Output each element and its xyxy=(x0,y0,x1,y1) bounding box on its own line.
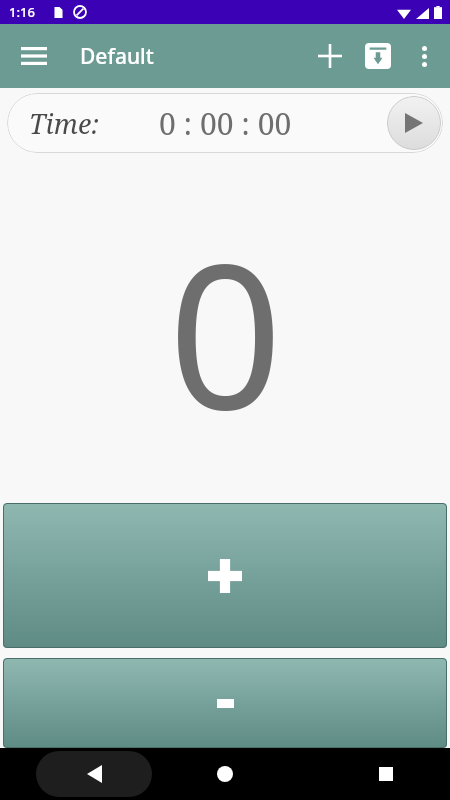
button[interactable]: Decrement xyxy=(3,658,447,748)
button[interactable]: Increment xyxy=(3,503,447,648)
button[interactable]: Save xyxy=(354,32,402,80)
staticText: 0 xyxy=(168,195,283,467)
staticText: Time: xyxy=(29,105,99,142)
button[interactable]: Recent apps xyxy=(362,750,410,798)
staticText: 0 : 00 : 00 xyxy=(159,103,292,144)
button[interactable]: Add xyxy=(306,32,354,80)
button[interactable]: Home xyxy=(201,750,249,798)
button[interactable]: Time: xyxy=(7,93,443,153)
staticText: Default xyxy=(80,42,154,71)
button[interactable]: More options xyxy=(402,34,446,78)
button[interactable]: Back xyxy=(36,751,152,797)
button[interactable]: Start timer xyxy=(387,96,441,150)
staticText: 1:16 xyxy=(9,3,35,21)
button[interactable]: Open navigation menu xyxy=(12,34,56,78)
